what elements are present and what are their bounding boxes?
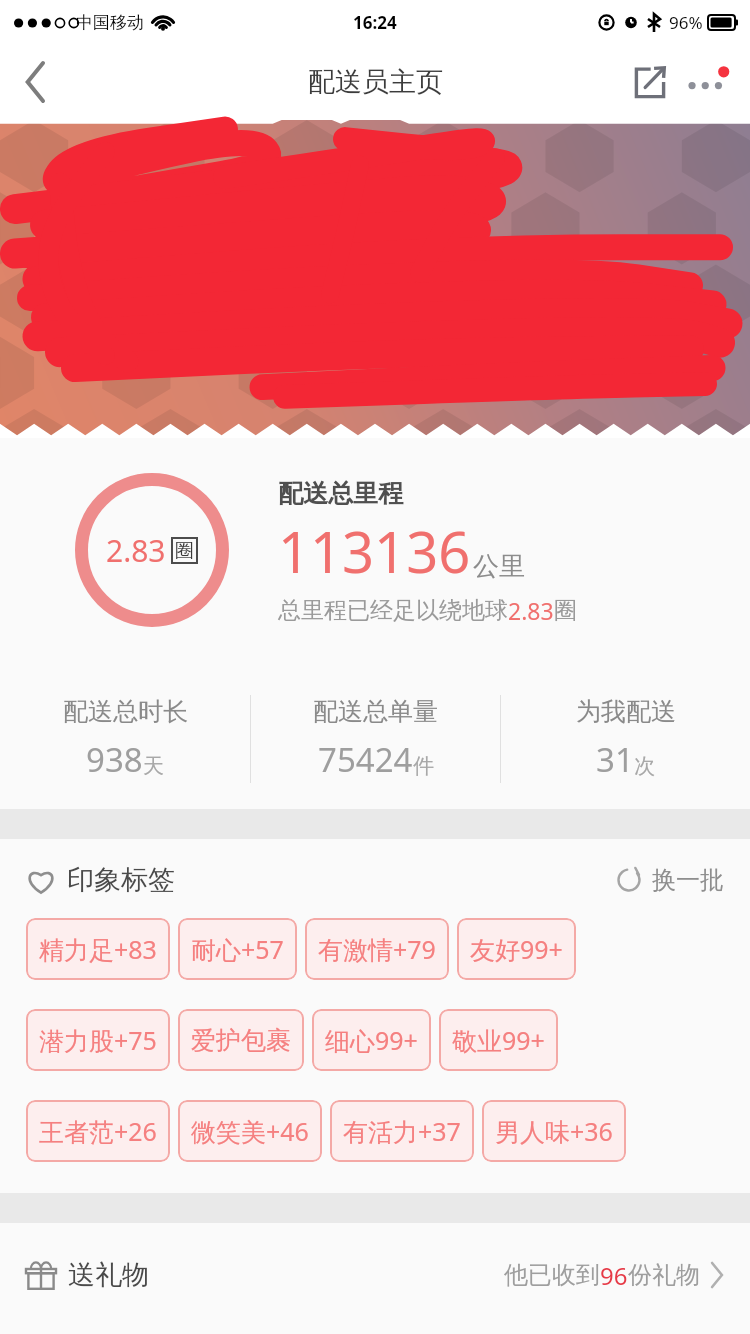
staticText: 中国移动 [76,12,144,33]
button[interactable]: Back [0,44,72,120]
staticText: 总里程已经足以绕地球 [278,596,508,625]
button[interactable]: 耐心+57 [178,918,297,980]
staticText: 王者范+26 [39,1114,157,1148]
button[interactable]: 男人味+36 [482,1100,626,1162]
button[interactable]: 细心99+ [312,1009,431,1071]
staticText: 有活力+37 [343,1114,461,1148]
button[interactable]: 有激情+79 [305,918,449,980]
button[interactable]: 王者范+26 [26,1100,170,1162]
staticText: 96 [600,1259,628,1292]
staticText: 换一批 [652,865,724,895]
staticText: 送礼物 [68,1258,149,1292]
button[interactable]: More options [678,52,736,112]
staticText: 113136 [278,513,471,589]
staticText: 份礼物 [628,1260,700,1290]
staticText: 2.83 [508,595,554,626]
staticText: 31 [596,737,634,782]
staticText: 配送总里程 [278,478,403,509]
staticText: 他已收到 [504,1260,600,1290]
staticText: 2.83 [106,530,166,571]
staticText: 天 [143,753,164,779]
staticText: 配送总单量 [313,696,438,727]
staticText: 精力足+83 [39,932,157,966]
staticText: 爱护包裹 [191,1025,291,1056]
button[interactable]: 友好99+ [457,918,576,980]
staticText: 为我配送 [576,696,676,727]
staticText: 耐心+57 [191,932,284,966]
staticText: 配送总时长 [63,696,188,727]
staticText: 圈 [554,596,577,625]
staticText: 938 [86,737,143,782]
staticText: 75424 [318,737,413,782]
button[interactable]: 爱护包裹 [178,1009,304,1071]
button[interactable]: 为我配送 [501,696,750,782]
staticText: 细心99+ [325,1023,418,1057]
button[interactable]: 潜力股+75 [26,1009,170,1071]
button[interactable]: 微笑美+46 [178,1100,322,1162]
staticText: 敬业99+ [452,1023,545,1057]
button[interactable]: 配送总时长 [0,696,250,782]
staticText: 潜力股+75 [39,1023,157,1057]
button[interactable]: 有活力+37 [330,1100,474,1162]
staticText: 16:24 [353,11,397,34]
staticText: 友好99+ [470,932,563,966]
button[interactable]: 敬业99+ [439,1009,558,1071]
button[interactable]: 换一批 [616,865,724,895]
staticText: 公里 [473,550,525,583]
button[interactable]: 送礼物 [0,1223,750,1327]
staticText: 配送员主页 [308,65,443,99]
staticText: 印象标签 [67,863,175,897]
staticText: 有激情+79 [318,932,436,966]
staticText: 圈 [175,539,194,563]
button[interactable]: Share [622,52,678,112]
staticText: 件 [413,753,434,779]
staticText: 男人味+36 [495,1114,613,1148]
staticText: 次 [634,753,655,779]
button[interactable]: 精力足+83 [26,918,170,980]
staticText: 96% [669,11,703,34]
button[interactable]: 配送总单量 [251,696,500,782]
staticText: 微笑美+46 [191,1114,309,1148]
